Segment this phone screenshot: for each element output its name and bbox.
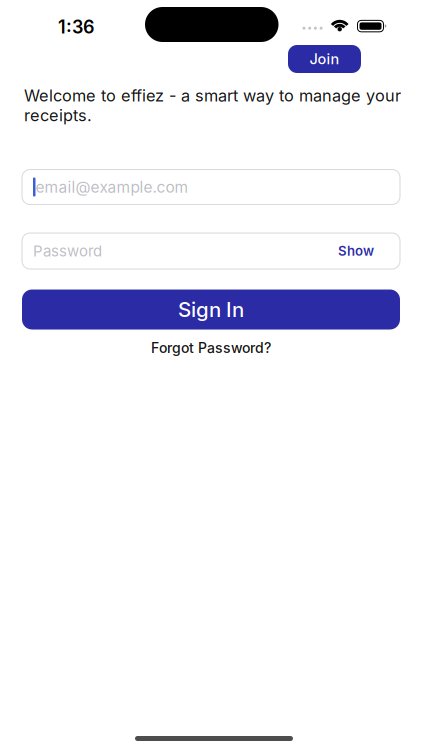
staticText: Join	[309, 50, 339, 68]
staticText: Sign In	[178, 297, 244, 322]
button[interactable]: Forgot Password?	[151, 339, 271, 356]
staticText: 1:36	[58, 16, 95, 38]
button[interactable]: Show	[338, 243, 374, 259]
button[interactable]: Join	[288, 45, 361, 73]
staticText: Welcome to effiez - a smart way to manag…	[24, 86, 401, 125]
button[interactable]: Password	[22, 233, 400, 269]
button[interactable]: Sign In	[22, 289, 400, 329]
button[interactable]: Email	[22, 169, 400, 204]
staticText: Password	[33, 242, 102, 260]
staticText: Forgot Password?	[151, 339, 271, 356]
staticText: email@example.com	[35, 178, 188, 196]
staticText: Show	[338, 243, 374, 259]
